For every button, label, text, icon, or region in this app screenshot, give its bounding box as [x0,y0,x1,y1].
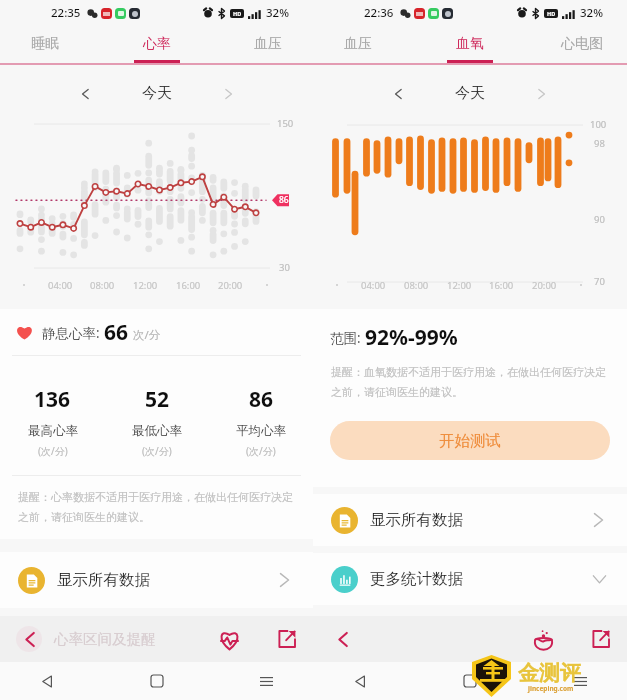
button[interactable]: Next day [212,77,246,111]
staticText: 心率 [143,35,171,53]
button[interactable]: 血氧 [437,26,503,65]
staticText: 血压 [344,35,372,53]
staticText: 30 [279,261,290,274]
button[interactable]: Back [343,664,377,698]
staticText: 32% [580,5,603,21]
staticText: (次/分) [246,444,276,458]
staticText: (次/分) [38,444,68,458]
button[interactable]: Share [270,622,304,656]
staticText: 心率区间及提醒 [54,630,156,648]
staticText: 12:00 [133,279,158,292]
staticText: 最低心率 [132,423,182,439]
staticText: 86 [249,385,274,414]
button[interactable]: Back [325,622,359,656]
button[interactable]: Previous day [68,77,102,111]
staticText: 金测评 [518,660,581,686]
staticText: 开始测试 [439,431,501,451]
button[interactable]: 心电图 [549,26,615,65]
staticText: 16:00 [489,279,514,292]
staticText: 100 [590,118,607,131]
button[interactable]: Home [140,664,174,698]
button[interactable]: 显示所有数据 [0,552,313,608]
button[interactable]: Heart rate [212,622,246,656]
staticText: 次/分 [133,327,161,343]
button[interactable]: 显示所有数据 [313,494,627,546]
staticText: 心电图 [561,35,603,53]
staticText: 范围: [330,329,365,347]
button[interactable]: Next day [525,77,559,111]
staticText: 12:00 [447,279,472,292]
button[interactable]: Share [584,622,618,656]
button[interactable]: 睡眠 [12,26,78,65]
staticText: 20:00 [218,279,243,292]
staticText: jinceping.com [528,684,574,693]
staticText: 今天 [142,84,172,103]
button[interactable]: Previous day [381,77,415,111]
button[interactable]: Measure SpO2 [526,622,560,656]
staticText: 提醒：血氧数据不适用于医疗用途，在做出任何医疗决定之前，请征询医生的建议。 [331,365,613,399]
staticText: 04:00 [361,279,386,292]
staticText: 92%-99% [365,323,458,352]
staticText: 最高心率 [28,423,78,439]
button[interactable]: Home [453,664,487,698]
button[interactable]: 心率 [124,26,190,65]
staticText: 血压 [254,35,282,53]
staticText: 04:00 [48,279,73,292]
button[interactable]: Recents [563,664,597,698]
staticText: (次/分) [142,444,172,458]
button[interactable]: 开始测试 [330,421,610,460]
staticText: 86 [279,194,289,206]
staticText: HD [547,10,556,17]
staticText: 静息心率: [42,324,104,342]
staticText: 98 [594,137,605,150]
button[interactable]: Back [12,622,46,656]
staticText: 22:36 [364,5,394,21]
staticText: 平均心率 [236,423,286,439]
staticText: 显示所有数据 [370,510,463,530]
button[interactable]: 血压 [325,26,391,65]
staticText: HD [233,10,242,17]
staticText: 52 [145,385,170,414]
staticText: 今天 [455,84,485,103]
staticText: 08:00 [90,279,115,292]
staticText: 更多统计数据 [370,569,463,589]
staticText: 血氧 [456,35,484,53]
staticText: 32% [266,5,289,21]
staticText: 150 [277,117,294,130]
button[interactable]: 更多统计数据 [313,553,627,605]
staticText: 显示所有数据 [57,570,150,590]
staticText: 90 [594,213,605,226]
staticText: 睡眠 [31,35,59,53]
staticText: 提醒：心率数据不适用于医疗用途，在做出任何医疗决定之前，请征询医生的建议。 [18,490,299,524]
staticText: 22:35 [51,5,81,21]
staticText: 08:00 [404,279,429,292]
button[interactable]: Back [30,664,64,698]
staticText: 70 [594,275,605,288]
button[interactable]: Recents [249,664,283,698]
staticText: 66 [104,318,129,347]
staticText: 16:00 [176,279,201,292]
staticText: 136 [34,385,71,414]
button[interactable]: 血压 [235,26,301,65]
staticText: 20:00 [532,279,557,292]
